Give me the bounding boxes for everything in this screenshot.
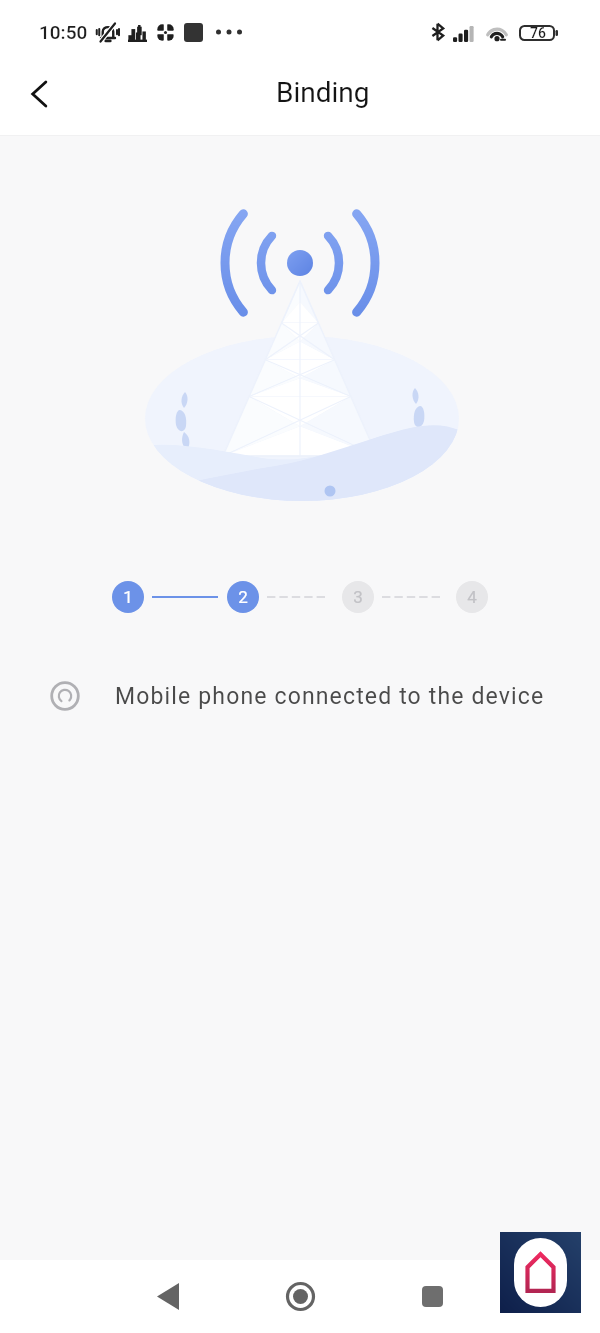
staticText: Binding: [276, 76, 370, 109]
button[interactable]: 3: [342, 581, 374, 613]
button[interactable]: 2: [227, 581, 259, 613]
staticText: 76: [530, 25, 546, 41]
button[interactable]: Recent apps: [402, 1266, 462, 1326]
button[interactable]: Home: [270, 1266, 330, 1326]
staticText: 4: [467, 587, 477, 607]
staticText: Mobile phone connected to the device: [115, 683, 545, 710]
staticText: 10:50: [39, 21, 88, 43]
button[interactable]: Back: [138, 1266, 198, 1326]
staticText: 3: [353, 587, 363, 607]
staticText: 2: [238, 587, 248, 607]
button[interactable]: Home app shortcut: [500, 1232, 581, 1313]
staticText: 1: [123, 587, 133, 607]
button[interactable]: 1: [112, 581, 144, 613]
button[interactable]: Back: [14, 69, 64, 119]
button[interactable]: Mobile phone connected to the device: [50, 680, 545, 712]
button[interactable]: 4: [456, 581, 488, 613]
